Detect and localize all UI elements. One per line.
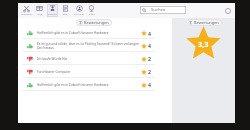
staticText: Bewertung: [47, 13, 58, 16]
button[interactable]: Bewertungen: [189, 19, 219, 26]
staticText: Chart: [89, 13, 95, 16]
staticText: 4: [148, 30, 151, 37]
button[interactable]: Hoffentlich gibt es in Zukunft bessere H…: [18, 78, 172, 91]
button[interactable]: Hoffentlich gibt es in Zukunft bessere H…: [18, 27, 172, 39]
staticText: Formular: [74, 13, 84, 16]
staticText: 4: [148, 81, 151, 88]
staticText: Bewertungen: [84, 20, 109, 25]
staticText: Hoffentlich gibt es in Zukunft bessere H…: [37, 31, 141, 35]
staticText: Bewertungen: [194, 20, 219, 25]
button[interactable]: Ich kaufe Würde Nie: [18, 52, 172, 65]
button[interactable]: Furchtbarer Computer: [18, 65, 172, 78]
staticText: Ich kaufe Würde Nie: [37, 57, 141, 61]
staticText: Liste: [37, 13, 43, 16]
button[interactable]: Es ist gut und solide, aber es ist Peeli…: [18, 39, 172, 52]
button[interactable]: Chart: [86, 4, 97, 17]
staticText: Suchen: [151, 7, 166, 13]
button[interactable]: Ausschneiden: [21, 4, 32, 17]
button[interactable]: Liste: [34, 4, 45, 17]
staticText: Hoffentlich gibt es in Zukunft bessere H…: [37, 83, 141, 87]
button[interactable]: Suchen: [140, 6, 186, 14]
staticText: 2: [148, 55, 151, 62]
button[interactable]: Hilfe: [223, 6, 232, 15]
staticText: 3,3: [198, 39, 209, 49]
staticText: Ausschneiden: [21, 13, 32, 16]
staticText: Bild: [63, 13, 68, 16]
button[interactable]: Bewertungen: [79, 19, 109, 26]
staticText: 4: [148, 42, 151, 49]
button[interactable]: Bewertung: [47, 4, 58, 17]
button[interactable]: Formular: [73, 4, 84, 17]
button[interactable]: Bild: [60, 4, 71, 17]
staticText: Furchtbarer Computer: [37, 70, 141, 74]
staticText: 2: [148, 68, 151, 75]
staticText: Es ist gut und solide, aber es ist Peeli…: [37, 42, 141, 50]
